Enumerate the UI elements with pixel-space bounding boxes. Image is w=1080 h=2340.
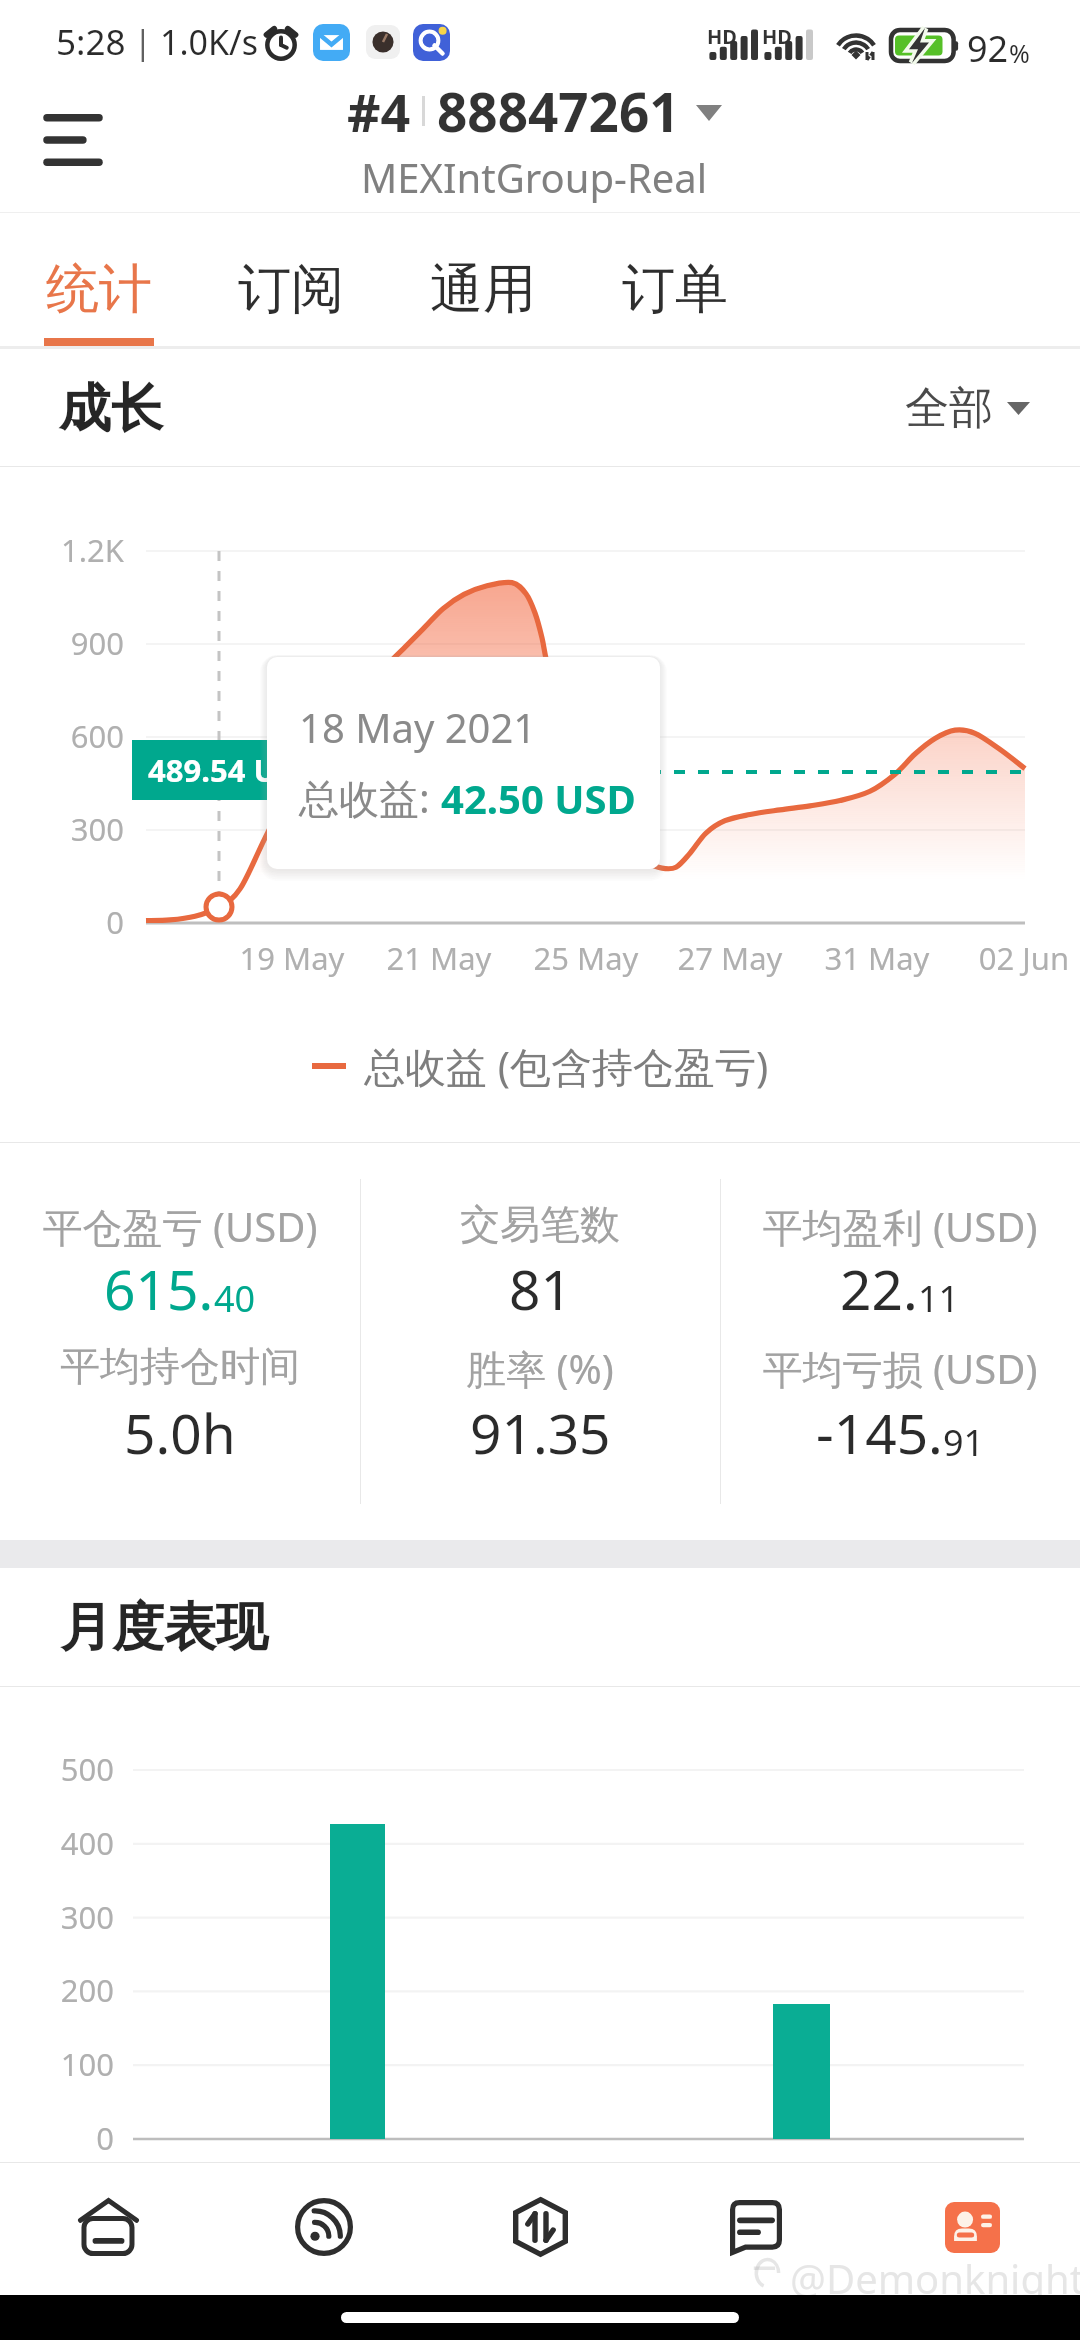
staticText: 订阅 <box>238 256 344 323</box>
staticText: 100 <box>0 2043 114 2085</box>
button[interactable]: 订阅 <box>237 213 429 346</box>
staticText: 平均持仓时间 <box>0 1341 360 1391</box>
staticText: 0 <box>0 2117 114 2159</box>
button[interactable]: Menu <box>18 85 128 195</box>
staticText: 88847261 <box>437 75 680 147</box>
staticText: 胜率 (%) <box>360 1341 720 1396</box>
staticText: 订单 <box>622 256 728 323</box>
button[interactable]: Accounts <box>864 2163 1080 2295</box>
staticText: | <box>134 20 152 64</box>
staticText: 27 May <box>650 937 810 979</box>
staticText: 5.0h <box>124 1395 236 1470</box>
button[interactable]: Signals <box>216 2163 432 2295</box>
staticText: 11 <box>918 1274 960 1323</box>
staticText: 总收益 (包含持仓盈亏) <box>364 1038 769 1094</box>
staticText: 25 May <box>506 937 666 979</box>
staticText: 900 <box>0 622 124 664</box>
staticText: 02 Jun <box>944 937 1080 979</box>
staticText: 92 <box>967 24 1009 73</box>
staticText: 统计 <box>46 256 152 323</box>
staticText: 1.0K/s <box>160 19 258 65</box>
staticText: 300 <box>0 808 124 850</box>
staticText: 月度表现 <box>60 1595 268 1661</box>
staticText: 42.50 USD <box>441 771 636 825</box>
button[interactable]: 订单 <box>621 213 741 346</box>
staticText: -145. <box>816 1395 943 1470</box>
staticText: 成长 <box>59 376 163 442</box>
button[interactable]: 通用 <box>429 213 621 346</box>
staticText: 200 <box>0 1969 114 2011</box>
staticText: 5:28 <box>56 18 126 66</box>
staticText: 0 <box>0 901 124 943</box>
staticText: 31 May <box>797 937 957 979</box>
staticText: 全部 <box>905 381 993 436</box>
staticText: #4 <box>347 76 411 147</box>
button[interactable]: 全部 <box>905 381 1030 436</box>
button[interactable]: 交易笔数 <box>360 1143 720 1540</box>
staticText: % <box>1009 36 1030 70</box>
staticText: 总收益: <box>299 770 441 825</box>
button[interactable]: Messages <box>648 2163 864 2295</box>
button[interactable]: 统计 <box>45 213 237 346</box>
staticText: 91.35 <box>470 1395 611 1470</box>
staticText: 18 May 2021 <box>299 700 537 754</box>
button[interactable]: #4 <box>347 75 722 203</box>
staticText: 22. <box>840 1251 918 1326</box>
staticText: @Demonknight <box>790 2251 1080 2305</box>
staticText: 400 <box>0 1822 114 1864</box>
staticText: HD <box>707 23 737 50</box>
staticText: 600 <box>0 715 124 757</box>
staticText: 1.2K <box>0 529 124 571</box>
staticText: 81 <box>509 1251 572 1326</box>
staticText: 489.54 USD <box>148 749 317 791</box>
button[interactable]: Trade <box>432 2163 648 2295</box>
staticText: 91 <box>943 1418 985 1467</box>
button[interactable]: 平均盈利 (USD) <box>720 1143 1080 1540</box>
staticText: 19 May <box>212 937 372 979</box>
staticText: MEXIntGroup-Real <box>361 150 708 203</box>
staticText: 615. <box>104 1251 214 1326</box>
staticText: 平均亏损 (USD) <box>720 1341 1080 1396</box>
staticText: 300 <box>0 1896 114 1938</box>
staticText: HD <box>762 23 792 50</box>
staticText: 平均盈利 (USD) <box>720 1199 1080 1254</box>
staticText: 交易笔数 <box>360 1199 720 1249</box>
button[interactable]: 平仓盈亏 (USD) <box>0 1143 360 1540</box>
button[interactable]: Home <box>0 2163 216 2295</box>
staticText: 40 <box>214 1274 256 1323</box>
staticText: 平仓盈亏 (USD) <box>0 1199 360 1254</box>
staticText: 500 <box>0 1748 114 1790</box>
staticText: 通用 <box>430 256 536 323</box>
staticText: 21 May <box>359 937 519 979</box>
